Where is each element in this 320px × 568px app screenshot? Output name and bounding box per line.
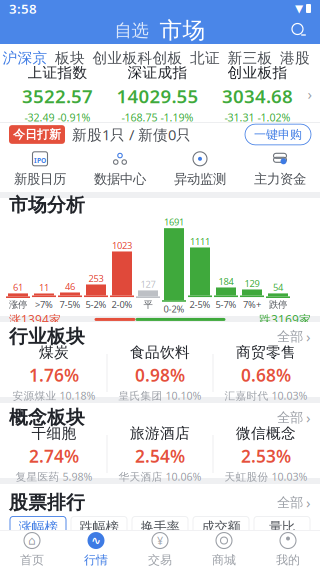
- button[interactable]: ⌂: [0, 531, 64, 568]
- button[interactable]: 成交额: [193, 516, 249, 537]
- button[interactable]: 行业板块: [0, 323, 320, 350]
- staticText: ›: [306, 493, 311, 512]
- button[interactable]: 创业板指: [207, 68, 307, 120]
- staticText: 2.74%: [29, 444, 79, 467]
- button[interactable]: 板块: [47, 44, 92, 66]
- button[interactable]: 量比: [254, 516, 310, 537]
- staticText: 复星医药 5.98%: [15, 469, 92, 484]
- staticText: 一键申购: [254, 127, 302, 142]
- staticText: 成交额: [201, 519, 240, 535]
- staticText: 61: [13, 281, 23, 293]
- button[interactable]: IPO: [0, 147, 80, 191]
- staticText: 5-2%: [85, 298, 106, 310]
- staticText: ∿: [91, 534, 101, 547]
- staticText: ⌂: [28, 534, 36, 547]
- staticText: 2-0%: [111, 298, 132, 310]
- button[interactable]: 创业板: [92, 44, 137, 66]
- staticText: 14029.55: [116, 83, 198, 108]
- staticText: 食品饮料: [130, 343, 190, 361]
- button[interactable]: 微信概念: [213, 431, 318, 477]
- button[interactable]: ∿: [64, 531, 128, 568]
- staticText: 市场分析: [9, 193, 85, 216]
- staticText: 跌幅榜: [79, 519, 118, 535]
- staticText: 天虹股份 10.03%: [224, 469, 307, 484]
- button[interactable]: 一键申购: [245, 124, 311, 145]
- staticText: 涨停: [9, 299, 27, 310]
- staticText: 3:58: [9, 0, 37, 17]
- staticText: 数据中心: [94, 171, 146, 187]
- staticText: 商城: [212, 552, 236, 567]
- staticText: 市场: [159, 17, 205, 44]
- button[interactable]: 商贸零售: [213, 350, 318, 396]
- staticText: 涨1394家: [9, 311, 61, 327]
- staticText: 干细胞: [31, 424, 76, 442]
- staticText: ›: [306, 327, 311, 346]
- button[interactable]: 旅游酒店: [107, 431, 212, 477]
- staticText: 微信概念: [236, 424, 296, 442]
- staticText: 创业板指: [227, 63, 287, 81]
- staticText: 换手率: [140, 519, 179, 535]
- button[interactable]: 搜索: [284, 17, 314, 43]
- staticText: 旅游酒店: [130, 424, 190, 442]
- staticText: 7%+: [243, 298, 261, 310]
- staticText: >7%: [35, 298, 53, 310]
- button[interactable]: 商城: [192, 531, 256, 568]
- button[interactable]: ¥: [128, 531, 192, 568]
- staticText: 54: [273, 281, 283, 293]
- button[interactable]: 沪深京: [2, 44, 47, 66]
- staticText: 新三板: [227, 49, 272, 67]
- staticText: 2.54%: [135, 444, 185, 467]
- staticText: 板块: [55, 49, 85, 67]
- button[interactable]: 干细胞: [1, 431, 106, 477]
- staticText: 沪深京: [2, 49, 47, 67]
- staticText: 129: [244, 277, 259, 289]
- staticText: 1111: [190, 235, 210, 247]
- staticText: 127: [140, 278, 155, 290]
- button[interactable]: 换手率: [132, 516, 188, 537]
- button[interactable]: 我的: [256, 531, 320, 568]
- staticText: 0-2%: [163, 303, 184, 315]
- staticText: 概念板块: [9, 406, 85, 429]
- button[interactable]: 异动监测: [160, 147, 240, 191]
- staticText: 行情: [84, 552, 108, 567]
- staticText: IPO: [34, 156, 46, 165]
- button[interactable]: 科创板: [137, 44, 182, 66]
- staticText: 今日打新: [13, 127, 61, 142]
- staticText: 3034.68: [222, 83, 293, 108]
- staticText: 汇嘉时代 10.03%: [224, 388, 307, 403]
- staticText: 0.98%: [135, 363, 185, 386]
- staticText: 7-5%: [59, 298, 80, 310]
- staticText: ▼: [295, 2, 303, 14]
- staticText: -32.49 -0.91%: [24, 110, 90, 124]
- staticText: 安源煤业 10.18%: [12, 388, 95, 403]
- button[interactable]: 概念板块: [0, 404, 320, 431]
- button[interactable]: 主力资金: [240, 147, 320, 191]
- button[interactable]: 食品饮料: [107, 350, 212, 396]
- button[interactable]: 市场: [159, 17, 205, 44]
- staticText: 涨幅榜: [18, 519, 57, 535]
- button[interactable]: 上证指数: [7, 68, 107, 120]
- staticText: 华天酒店 10.06%: [118, 469, 201, 484]
- staticText: 0.68%: [241, 363, 291, 386]
- button[interactable]: 数据中心: [80, 147, 160, 191]
- staticText: 煤炭: [39, 343, 69, 361]
- staticText: 平: [143, 299, 152, 310]
- button[interactable]: 北证: [182, 44, 227, 66]
- staticText: 1023: [112, 239, 132, 251]
- staticText: -168.75 -1.19%: [121, 110, 193, 124]
- staticText: ¥: [157, 533, 163, 548]
- button[interactable]: 跌幅榜: [71, 516, 127, 537]
- button[interactable]: 涨幅榜: [10, 516, 66, 537]
- staticText: 行业板块: [9, 325, 85, 348]
- staticText: 5-7%: [215, 298, 236, 310]
- staticText: -31.31 -1.02%: [224, 110, 290, 124]
- button[interactable]: 深证成指: [107, 68, 207, 120]
- button[interactable]: 港股: [272, 44, 317, 66]
- staticText: ›: [307, 84, 312, 104]
- button[interactable]: 新三板: [227, 44, 272, 66]
- staticText: 科创板: [137, 49, 182, 67]
- button[interactable]: 自选: [114, 20, 148, 41]
- button[interactable]: 煤炭: [1, 350, 106, 396]
- staticText: 新股1只 / 新债0只: [72, 125, 191, 144]
- button[interactable]: 股票排行: [0, 488, 320, 516]
